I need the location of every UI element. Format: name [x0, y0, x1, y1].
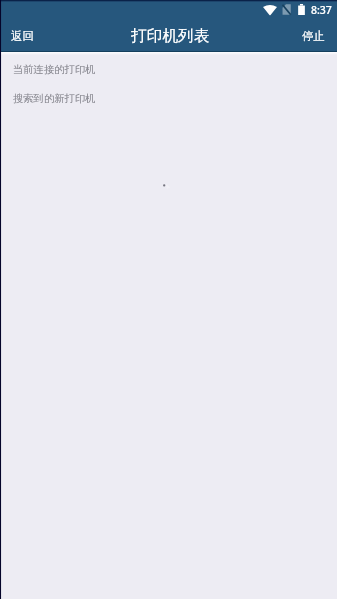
- button[interactable]: 搜索到的新打印机: [0, 92, 337, 105]
- other: Wi-Fi signal: [263, 5, 277, 15]
- staticText: 当前连接的打印机: [13, 63, 96, 76]
- staticText: 8:37: [311, 3, 332, 17]
- button[interactable]: 当前连接的打印机: [0, 63, 337, 76]
- button[interactable]: 停止: [290, 23, 337, 49]
- staticText: 搜索到的新打印机: [13, 92, 96, 105]
- other: No SIM card: [282, 4, 291, 15]
- staticText: 停止: [302, 29, 325, 43]
- staticText: 返回: [11, 29, 34, 43]
- button[interactable]: 返回: [0, 23, 45, 49]
- other: Battery: [298, 4, 305, 15]
- staticText: 打印机列表: [131, 26, 210, 46]
